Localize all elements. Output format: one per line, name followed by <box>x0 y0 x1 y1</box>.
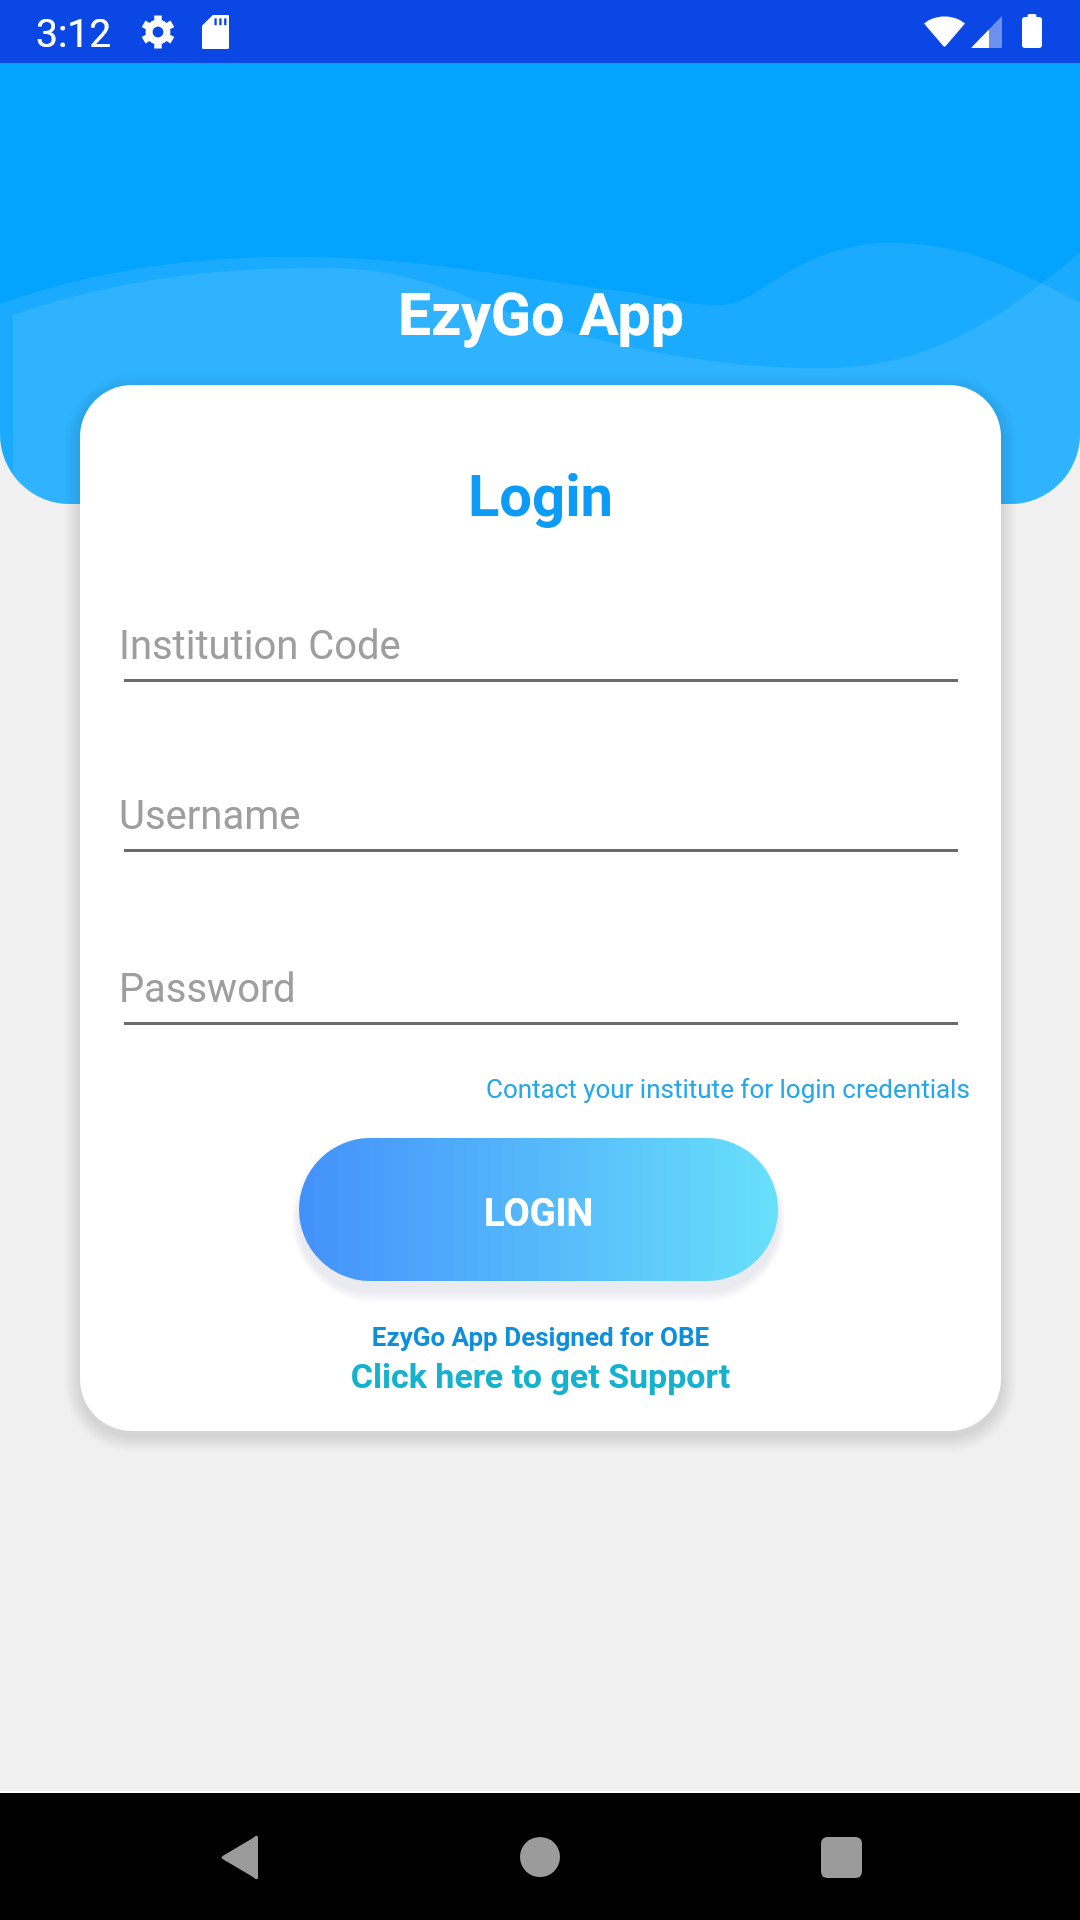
staticText: 3:12 <box>36 11 112 57</box>
staticText: Login <box>80 462 1001 530</box>
button[interactable]: Contact your institute for login credent… <box>486 1074 970 1104</box>
staticText: LOGIN <box>484 1191 594 1236</box>
staticText: EzyGo App Designed for OBE <box>80 1322 1001 1352</box>
button[interactable]: Username <box>124 775 958 852</box>
button[interactable]: Back <box>194 1812 284 1902</box>
button[interactable]: Home <box>495 1812 585 1902</box>
staticText: Institution Code <box>119 622 401 669</box>
staticText: EzyGo App <box>398 280 684 349</box>
button[interactable]: Recent apps <box>796 1812 886 1902</box>
staticText: Password <box>119 965 296 1012</box>
button[interactable]: LOGIN <box>299 1138 778 1281</box>
staticText: Username <box>119 792 301 839</box>
button[interactable]: Password <box>124 948 958 1025</box>
button[interactable]: Institution Code <box>124 605 958 682</box>
button[interactable]: Click here to get Support <box>80 1356 1001 1396</box>
